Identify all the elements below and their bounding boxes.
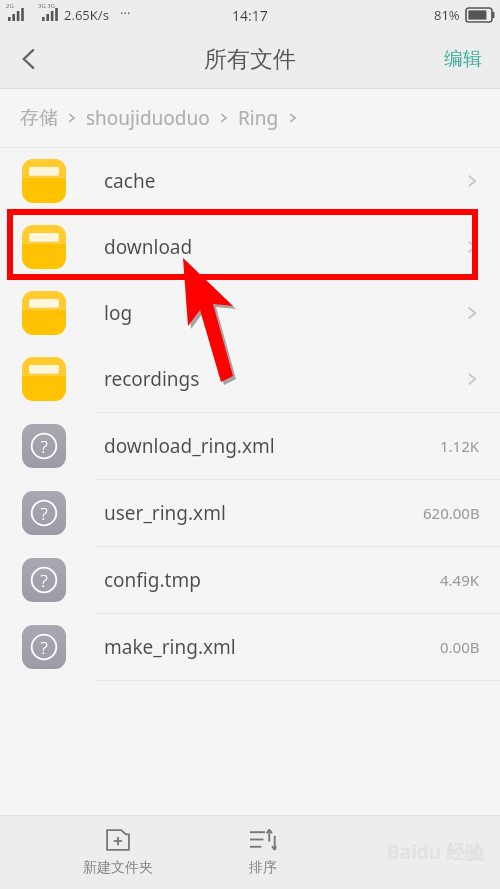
staticText: user_ring.xml xyxy=(104,500,423,526)
staticText: log xyxy=(104,300,464,326)
staticText: shoujiduoduo xyxy=(86,105,210,131)
staticText: 2.65K/s xyxy=(64,6,109,24)
staticText: recordings xyxy=(104,366,464,392)
button[interactable]: ? xyxy=(0,614,500,680)
button[interactable]: Ring xyxy=(236,99,281,137)
staticText: 620.00B xyxy=(423,503,480,523)
button[interactable]: ? xyxy=(0,547,500,613)
button[interactable]: recordings xyxy=(0,346,500,412)
staticText: Baidu 经验 xyxy=(387,839,484,865)
button[interactable]: log xyxy=(0,280,500,346)
button[interactable]: download xyxy=(0,214,500,280)
staticText: 新建文件夹 xyxy=(83,859,153,877)
staticText: ? xyxy=(40,502,48,525)
button[interactable]: ? xyxy=(0,480,500,546)
staticText: make_ring.xml xyxy=(104,634,440,660)
staticText: 存储 xyxy=(20,106,58,130)
staticText: 0.00B xyxy=(440,637,480,657)
staticText: Ring xyxy=(238,105,279,131)
button[interactable]: Back xyxy=(0,30,58,88)
button[interactable]: 编辑 xyxy=(426,35,500,83)
staticText: 14:17 xyxy=(232,6,268,25)
button[interactable]: 新建文件夹 xyxy=(69,821,167,883)
staticText: 所有文件 xyxy=(204,45,296,74)
staticText: config.tmp xyxy=(104,567,440,593)
staticText: 1.12K xyxy=(440,436,480,456)
staticText: ? xyxy=(40,569,48,592)
button[interactable]: cache xyxy=(0,148,500,214)
staticText: 81% xyxy=(434,6,460,24)
button[interactable]: 存储 xyxy=(18,100,60,136)
staticText: download_ring.xml xyxy=(104,433,440,459)
staticText: 3G 3G xyxy=(38,2,56,10)
staticText: download xyxy=(104,234,464,260)
staticText: 4.49K xyxy=(440,570,480,590)
staticText: ··· xyxy=(120,4,131,22)
staticText: 2G xyxy=(6,2,14,10)
staticText: 排序 xyxy=(249,859,277,877)
button[interactable]: ? xyxy=(0,413,500,479)
staticText: ? xyxy=(40,636,48,659)
button[interactable]: 排序 xyxy=(235,821,291,883)
button[interactable]: shoujiduoduo xyxy=(84,99,212,137)
staticText: cache xyxy=(104,168,464,194)
staticText: ? xyxy=(40,435,48,458)
staticText: 编辑 xyxy=(444,47,482,71)
